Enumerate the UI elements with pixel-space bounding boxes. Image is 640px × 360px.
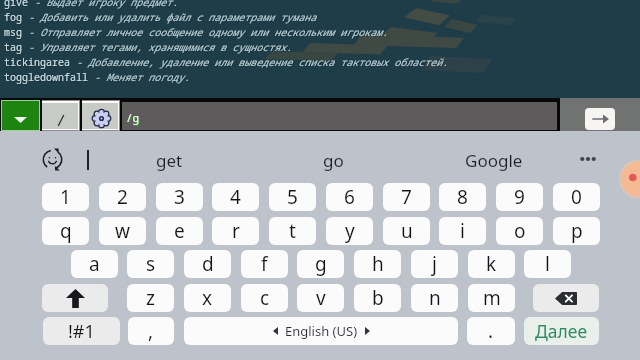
- staticText: d: [202, 251, 214, 277]
- staticText: msg: [4, 25, 22, 39]
- staticText: 7: [401, 184, 412, 210]
- staticText: tag: [5, 41, 23, 55]
- staticText: 3: [174, 184, 185, 210]
- button[interactable]: q: [42, 217, 89, 245]
- button[interactable]: 7: [383, 183, 430, 211]
- staticText: tickingarea: [4, 55, 70, 69]
- button[interactable]: e: [156, 217, 203, 245]
- button[interactable]: Shift: [42, 284, 108, 312]
- staticText: /g: [126, 110, 140, 125]
- button[interactable]: Space: [184, 317, 458, 345]
- staticText: Далее: [535, 319, 588, 343]
- staticText: - Управляет тегами, хранящимися в сущнос…: [22, 40, 292, 54]
- staticText: i: [460, 218, 465, 244]
- button[interactable]: s: [127, 250, 174, 278]
- button[interactable]: x: [184, 284, 231, 312]
- staticText: - Выдает игроку предмет.: [28, 0, 178, 9]
- staticText: j: [432, 251, 437, 277]
- button[interactable]: Settings: [82, 100, 120, 131]
- staticText: /g: [127, 111, 141, 126]
- button[interactable]: .: [467, 317, 515, 345]
- button[interactable]: g: [297, 250, 344, 278]
- staticText: - Меняет погоду.: [88, 70, 190, 84]
- staticText: x: [202, 285, 213, 311]
- button[interactable]: f: [241, 250, 288, 278]
- button[interactable]: z: [127, 284, 174, 312]
- staticText: f: [261, 251, 268, 277]
- button[interactable]: o: [496, 217, 543, 245]
- staticText: n: [429, 285, 441, 311]
- button[interactable]: Send: [585, 108, 615, 130]
- button[interactable]: u: [383, 217, 430, 245]
- button[interactable]: b: [354, 284, 401, 312]
- button[interactable]: Backspace: [533, 284, 599, 312]
- button[interactable]: 5: [269, 183, 316, 211]
- button[interactable]: [42, 100, 80, 131]
- staticText: !#1: [68, 319, 95, 344]
- staticText: - Управляет тегами, хранящимися в сущнос…: [23, 41, 293, 55]
- button[interactable]: 1: [42, 183, 89, 211]
- staticText: fog: [4, 10, 22, 24]
- staticText: - Отправляет личное сообщение одному или…: [23, 26, 389, 40]
- button[interactable]: c: [241, 284, 288, 312]
- button[interactable]: ,: [128, 317, 174, 345]
- button[interactable]: a: [71, 250, 118, 278]
- staticText: go: [323, 149, 344, 172]
- staticText: .: [488, 318, 494, 344]
- button[interactable]: 2: [99, 183, 146, 211]
- staticText: z: [146, 285, 155, 311]
- button[interactable]: 4: [212, 183, 259, 211]
- staticText: c: [260, 285, 270, 311]
- staticText: k: [486, 251, 497, 277]
- staticText: tag: [4, 40, 22, 54]
- button[interactable]: /g: [122, 102, 557, 130]
- button[interactable]: m: [468, 284, 515, 312]
- button[interactable]: y: [326, 217, 373, 245]
- button[interactable]: d: [184, 250, 231, 278]
- staticText: - Добавить или удалить файл с параметрам…: [23, 11, 317, 25]
- staticText: - Добавление, удаление или выведение спи…: [70, 55, 448, 69]
- button[interactable]: r: [212, 217, 259, 245]
- button[interactable]: h: [354, 250, 401, 278]
- staticText: r: [232, 218, 240, 244]
- staticText: - Меняет погоду.: [89, 71, 191, 85]
- staticText: l: [545, 251, 550, 277]
- button[interactable]: l: [524, 250, 571, 278]
- button[interactable]: p: [553, 217, 600, 245]
- staticText: a: [89, 251, 100, 277]
- button[interactable]: v: [297, 284, 344, 312]
- staticText: g: [315, 251, 327, 277]
- button[interactable]: w: [99, 217, 146, 245]
- staticText: t: [289, 218, 296, 244]
- button[interactable]: 3: [156, 183, 203, 211]
- button[interactable]: get: [114, 145, 224, 175]
- staticText: 1: [60, 184, 71, 210]
- staticText: y: [345, 218, 355, 244]
- button[interactable]: j: [411, 250, 458, 278]
- button[interactable]: 9: [496, 183, 543, 211]
- staticText: toggledownfall: [4, 70, 88, 84]
- staticText: w: [115, 218, 130, 244]
- staticText: h: [372, 251, 384, 277]
- button[interactable]: More options: [573, 145, 603, 174]
- button[interactable]: n: [411, 284, 458, 312]
- staticText: 5: [287, 184, 298, 210]
- staticText: s: [146, 251, 156, 277]
- staticText: u: [401, 218, 413, 244]
- button[interactable]: go: [278, 145, 388, 175]
- button[interactable]: Hide console: [1, 100, 40, 131]
- button[interactable]: 6: [326, 183, 373, 211]
- button[interactable]: t: [269, 217, 316, 245]
- button[interactable]: Emoji search: [38, 145, 66, 173]
- button[interactable]: i: [439, 217, 486, 245]
- button[interactable]: !#1: [43, 317, 120, 345]
- button[interactable]: 0: [553, 183, 600, 211]
- staticText: give: [4, 0, 28, 9]
- staticText: - Добавить или удалить файл с параметрам…: [22, 10, 316, 24]
- staticText: ,: [148, 318, 154, 344]
- button[interactable]: Google: [439, 145, 549, 175]
- button[interactable]: 8: [439, 183, 486, 211]
- button[interactable]: Далее: [524, 317, 599, 345]
- button[interactable]: k: [468, 250, 515, 278]
- staticText: 8: [457, 184, 468, 210]
